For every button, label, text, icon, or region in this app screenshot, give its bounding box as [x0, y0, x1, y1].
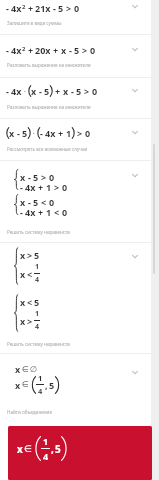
- button[interactable]: x: [0, 242, 151, 354]
- button[interactable]: x: [0, 161, 151, 242]
- button[interactable]: -: [0, 77, 151, 119]
- staticText: 20x: [35, 44, 51, 56]
- staticText: 0: [49, 196, 55, 208]
- staticText: 0: [85, 127, 91, 139]
- staticText: 0: [49, 171, 55, 183]
- staticText: -: [17, 127, 20, 139]
- staticText: -: [71, 85, 74, 97]
- staticText: x: [20, 249, 26, 261]
- staticText: 4: [38, 386, 43, 396]
- staticText: -: [28, 171, 31, 183]
- button[interactable]: Expand step: [127, 364, 143, 380]
- staticText: 2: [22, 3, 26, 11]
- staticText: 1: [66, 127, 72, 139]
- staticText: x: [20, 315, 26, 327]
- staticText: 5: [49, 379, 55, 391]
- staticText: >: [82, 44, 88, 56]
- staticText: >: [66, 2, 72, 14]
- staticText: 5: [34, 249, 40, 261]
- button[interactable]: Expand step: [127, 167, 143, 183]
- staticText: 0: [90, 44, 96, 56]
- staticText: 1: [38, 373, 43, 383]
- staticText: 1: [46, 181, 52, 193]
- staticText: ,: [45, 379, 48, 391]
- staticText: ·: [33, 129, 35, 137]
- staticText: -: [53, 2, 56, 14]
- staticText: 0: [62, 206, 68, 218]
- staticText: +: [28, 44, 34, 56]
- staticText: Решить систему неравенств: [7, 341, 70, 347]
- staticText: Запишите в виде суммы: [7, 20, 62, 26]
- staticText: ∅: [30, 365, 37, 374]
- staticText: <: [27, 268, 33, 280]
- staticText: 5: [58, 2, 64, 14]
- staticText: ∈: [24, 444, 32, 454]
- staticText: 4: [35, 275, 40, 285]
- button[interactable]: x: [0, 119, 151, 161]
- staticText: 5: [44, 85, 50, 97]
- staticText: -: [6, 85, 9, 97]
- staticText: 5: [22, 127, 28, 139]
- staticText: >: [77, 127, 83, 139]
- button[interactable]: Expand step: [127, 82, 143, 98]
- staticText: x: [20, 296, 26, 308]
- staticText: 0: [62, 181, 68, 193]
- staticText: 1: [35, 262, 40, 272]
- staticText: 4: [43, 450, 49, 462]
- staticText: >: [27, 249, 33, 261]
- staticText: +: [28, 2, 34, 14]
- staticText: 21x: [35, 2, 51, 14]
- staticText: <: [41, 196, 47, 208]
- staticText: 4x: [11, 85, 22, 97]
- staticText: Разложить выражение на множители: [7, 104, 91, 110]
- staticText: -: [20, 181, 23, 193]
- staticText: -: [40, 127, 43, 139]
- staticText: x: [63, 85, 69, 97]
- staticText: +: [58, 127, 64, 139]
- staticText: x: [17, 442, 23, 456]
- button[interactable]: Expand step: [127, 41, 143, 57]
- staticText: x: [20, 268, 26, 280]
- staticText: x: [20, 171, 26, 183]
- staticText: <: [27, 296, 33, 308]
- staticText: Найти объединение: [7, 409, 52, 415]
- button[interactable]: x: [8, 426, 152, 480]
- staticText: Решить систему неравенств: [7, 229, 70, 235]
- staticText: x: [15, 379, 21, 391]
- staticText: 4: [35, 322, 40, 332]
- staticText: -: [20, 206, 23, 218]
- staticText: 5: [33, 196, 39, 208]
- staticText: 1: [46, 206, 52, 218]
- staticText: <: [54, 206, 60, 218]
- staticText: ∈: [22, 380, 29, 389]
- staticText: x: [15, 363, 21, 375]
- staticText: x: [31, 85, 37, 97]
- staticText: x: [9, 127, 15, 139]
- staticText: x: [61, 44, 67, 56]
- button[interactable]: -: [0, 0, 151, 35]
- staticText: 5: [74, 44, 80, 56]
- button[interactable]: x: [0, 354, 151, 480]
- staticText: 4x: [25, 181, 36, 193]
- staticText: ∈: [22, 365, 29, 374]
- staticText: 5: [34, 296, 40, 308]
- staticText: +: [38, 181, 44, 193]
- staticText: 2: [22, 45, 26, 53]
- button[interactable]: Expand step: [127, 0, 143, 14]
- staticText: -: [6, 44, 9, 56]
- button[interactable]: Expand step: [127, 124, 143, 140]
- staticText: ·: [24, 87, 26, 95]
- staticText: Рассмотреть все возможные случаи: [7, 146, 88, 152]
- staticText: +: [53, 44, 59, 56]
- staticText: -: [69, 44, 72, 56]
- staticText: >: [54, 181, 60, 193]
- staticText: >: [27, 315, 33, 327]
- staticText: 0: [92, 85, 98, 97]
- staticText: 4x: [11, 44, 22, 56]
- staticText: 1: [35, 309, 40, 319]
- staticText: 4x: [45, 127, 56, 139]
- staticText: >: [84, 85, 90, 97]
- button[interactable]: Expand step: [127, 248, 143, 264]
- staticText: -: [28, 196, 31, 208]
- button[interactable]: -: [0, 35, 151, 78]
